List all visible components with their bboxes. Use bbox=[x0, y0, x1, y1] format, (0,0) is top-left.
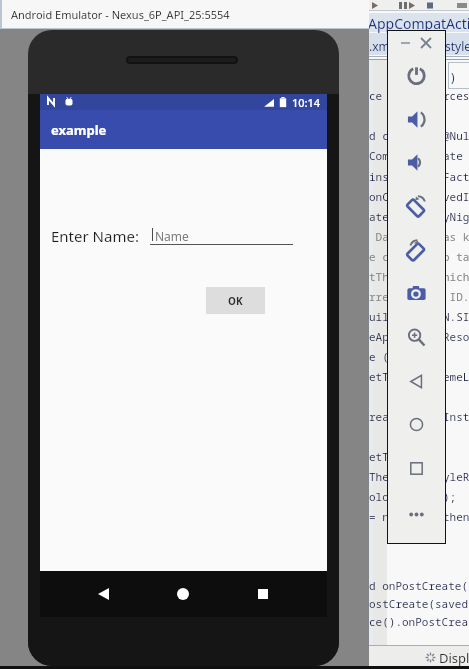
staticText: Com bbox=[369, 148, 389, 163]
staticText: ins bbox=[369, 169, 389, 184]
button[interactable]: Screenshot bbox=[387, 275, 446, 311]
staticText: vedI bbox=[443, 189, 469, 204]
staticText: as k bbox=[443, 229, 469, 244]
button[interactable]: Minimise bbox=[397, 35, 413, 51]
staticText: Display bbox=[439, 649, 469, 667]
button[interactable]: Close bbox=[418, 35, 434, 51]
staticText: OK bbox=[228, 294, 243, 308]
staticText: uil bbox=[369, 309, 389, 324]
staticText: style bbox=[445, 38, 469, 54]
button[interactable]: Overview bbox=[387, 450, 446, 486]
staticText: Da bbox=[369, 229, 389, 244]
staticText: onC bbox=[369, 189, 389, 204]
staticText: d onPostCreate( bbox=[369, 578, 468, 593]
staticText: Android Emulator - Nexus_6P_API_25:5554 bbox=[11, 7, 230, 22]
staticText: yleR bbox=[443, 469, 469, 484]
staticText: d c bbox=[369, 128, 389, 143]
button[interactable]: OK bbox=[206, 287, 265, 314]
staticText: hich bbox=[443, 269, 469, 284]
staticText: etT bbox=[369, 369, 389, 384]
button[interactable]: More bbox=[387, 496, 446, 532]
staticText: then bbox=[443, 509, 469, 524]
staticText: Reso bbox=[443, 329, 469, 344]
staticText: eAp bbox=[369, 329, 389, 344]
button[interactable]: Rotate right bbox=[387, 232, 446, 268]
staticText: ) bbox=[451, 69, 455, 85]
staticText: ce bbox=[369, 88, 383, 103]
staticText: etT bbox=[369, 449, 389, 464]
staticText: rre bbox=[369, 289, 389, 304]
button[interactable]: Home bbox=[387, 406, 446, 442]
staticText: ID. bbox=[443, 289, 469, 304]
button[interactable]: Home bbox=[163, 571, 203, 617]
staticText: ce().onPostCrea bbox=[369, 614, 468, 629]
staticText: The bbox=[369, 469, 389, 484]
staticText: e ( bbox=[369, 349, 389, 364]
staticText: ostCreate(saved bbox=[369, 596, 468, 611]
staticText: emeL bbox=[443, 369, 469, 384]
staticText: c bbox=[387, 69, 393, 85]
staticText: ate bbox=[443, 148, 463, 163]
button[interactable]: Back bbox=[387, 363, 446, 399]
staticText: AppCompatActivity bbox=[368, 14, 469, 33]
staticText: Fact bbox=[443, 169, 469, 184]
staticText: example bbox=[51, 121, 107, 139]
staticText: @Nul bbox=[443, 128, 469, 143]
button[interactable]: Recents bbox=[243, 571, 283, 617]
button[interactable]: Rotate left bbox=[387, 188, 446, 224]
button[interactable]: Back bbox=[83, 571, 123, 617]
staticText: Inst bbox=[443, 409, 469, 424]
staticText: tTh bbox=[369, 269, 389, 284]
staticText: rces bbox=[443, 88, 469, 103]
staticText: Name bbox=[155, 228, 189, 244]
staticText: Enter Name: bbox=[51, 226, 139, 246]
staticText: .xm bbox=[369, 38, 390, 54]
staticText: rea bbox=[369, 409, 389, 424]
staticText: ate bbox=[369, 209, 389, 224]
staticText: 10:14 bbox=[292, 95, 321, 110]
button[interactable]: Zoom bbox=[387, 319, 446, 355]
staticText: yNig bbox=[443, 209, 469, 224]
staticText: e c bbox=[369, 249, 389, 264]
button[interactable]: Power bbox=[387, 57, 446, 93]
button[interactable]: Volume up bbox=[387, 101, 446, 137]
button[interactable]: Volume down bbox=[387, 144, 446, 180]
staticText: = n bbox=[369, 509, 389, 524]
staticText: olo bbox=[369, 489, 389, 504]
staticText: ); bbox=[443, 489, 457, 504]
staticText: o ta bbox=[443, 249, 469, 264]
staticText: N.SI bbox=[443, 309, 469, 324]
